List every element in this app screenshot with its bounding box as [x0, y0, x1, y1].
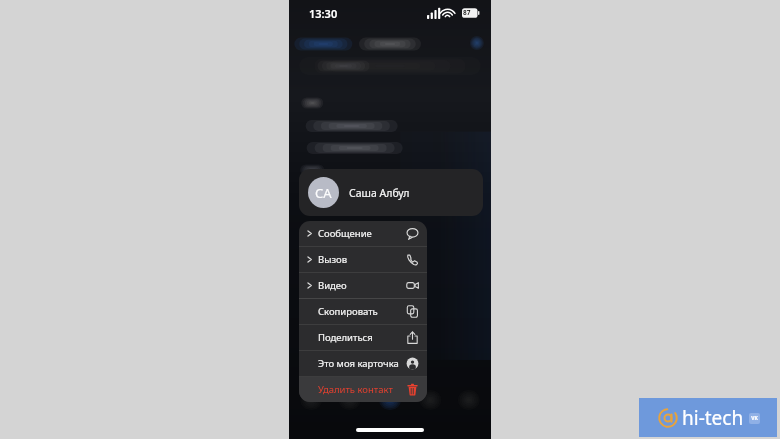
- staticText: Саша Албул: [349, 186, 410, 200]
- staticText: Скопировать: [318, 305, 406, 318]
- staticText: Удалить контакт: [318, 383, 406, 396]
- staticText: Сообщение: [318, 227, 406, 240]
- staticText: VK: [751, 415, 758, 422]
- staticText: CA: [315, 184, 332, 202]
- staticText: hi-tech: [682, 405, 744, 431]
- button[interactable]: CA: [299, 169, 483, 216]
- staticText: Вызов: [318, 253, 406, 266]
- button[interactable]: Видео: [299, 273, 427, 298]
- button[interactable]: Сообщение: [299, 221, 427, 246]
- staticText: Поделиться: [318, 331, 406, 344]
- button[interactable]: Поделиться: [299, 325, 427, 350]
- staticText: Это моя карточка: [318, 357, 406, 370]
- staticText: Видео: [318, 279, 406, 292]
- button[interactable]: Вызов: [299, 247, 427, 272]
- button[interactable]: Это моя карточка: [299, 351, 427, 376]
- button[interactable]: Удалить контакт: [299, 377, 427, 402]
- staticText: 87: [463, 8, 471, 17]
- button[interactable]: Скопировать: [299, 299, 427, 324]
- staticText: 13:30: [309, 6, 338, 21]
